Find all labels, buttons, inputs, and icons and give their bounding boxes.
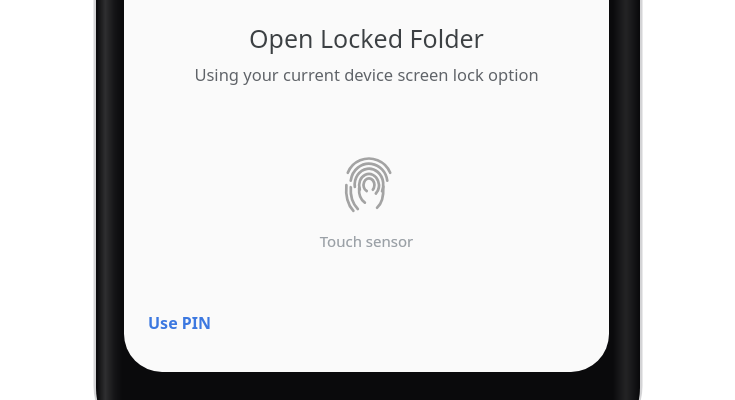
- staticText: Using your current device screen lock op…: [124, 63, 609, 85]
- button[interactable]: Use PIN: [148, 308, 212, 338]
- button[interactable]: Fingerprint sensor: [343, 151, 395, 214]
- staticText: Open Locked Folder: [124, 21, 609, 55]
- staticText: Use PIN: [148, 312, 212, 334]
- staticText: Touch sensor: [124, 231, 609, 251]
